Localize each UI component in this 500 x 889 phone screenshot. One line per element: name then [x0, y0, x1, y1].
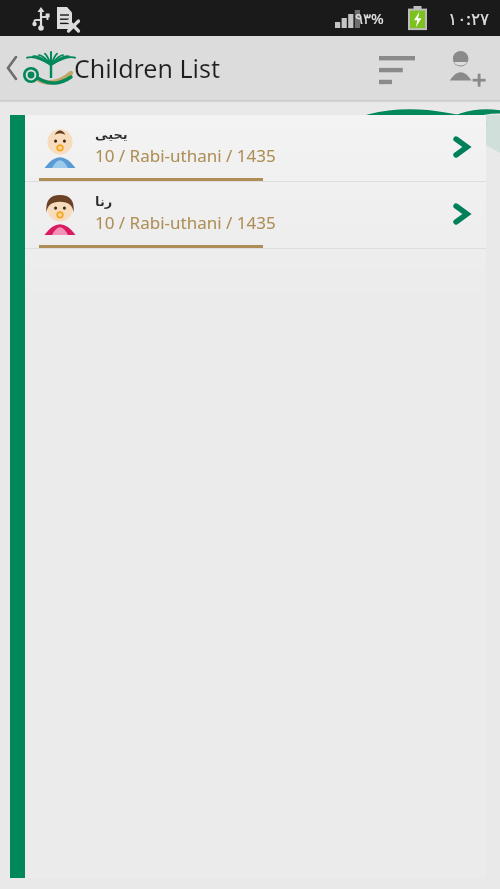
- staticText: 10 / Rabi-uthani / 1435: [95, 211, 276, 234]
- staticText: يحيى: [95, 127, 128, 142]
- button[interactable]: رنا: [25, 182, 486, 249]
- staticText: ٩٣%: [355, 8, 384, 28]
- button[interactable]: Children List: [74, 51, 220, 85]
- staticText: رنا: [95, 194, 113, 209]
- staticText: ١٠:٢٧: [448, 7, 490, 30]
- button[interactable]: Add child: [428, 36, 500, 100]
- staticText: 10 / Rabi-uthani / 1435: [95, 144, 276, 167]
- button[interactable]: Sort: [366, 36, 428, 100]
- button[interactable]: Back: [0, 36, 72, 100]
- button[interactable]: يحيى: [25, 115, 486, 182]
